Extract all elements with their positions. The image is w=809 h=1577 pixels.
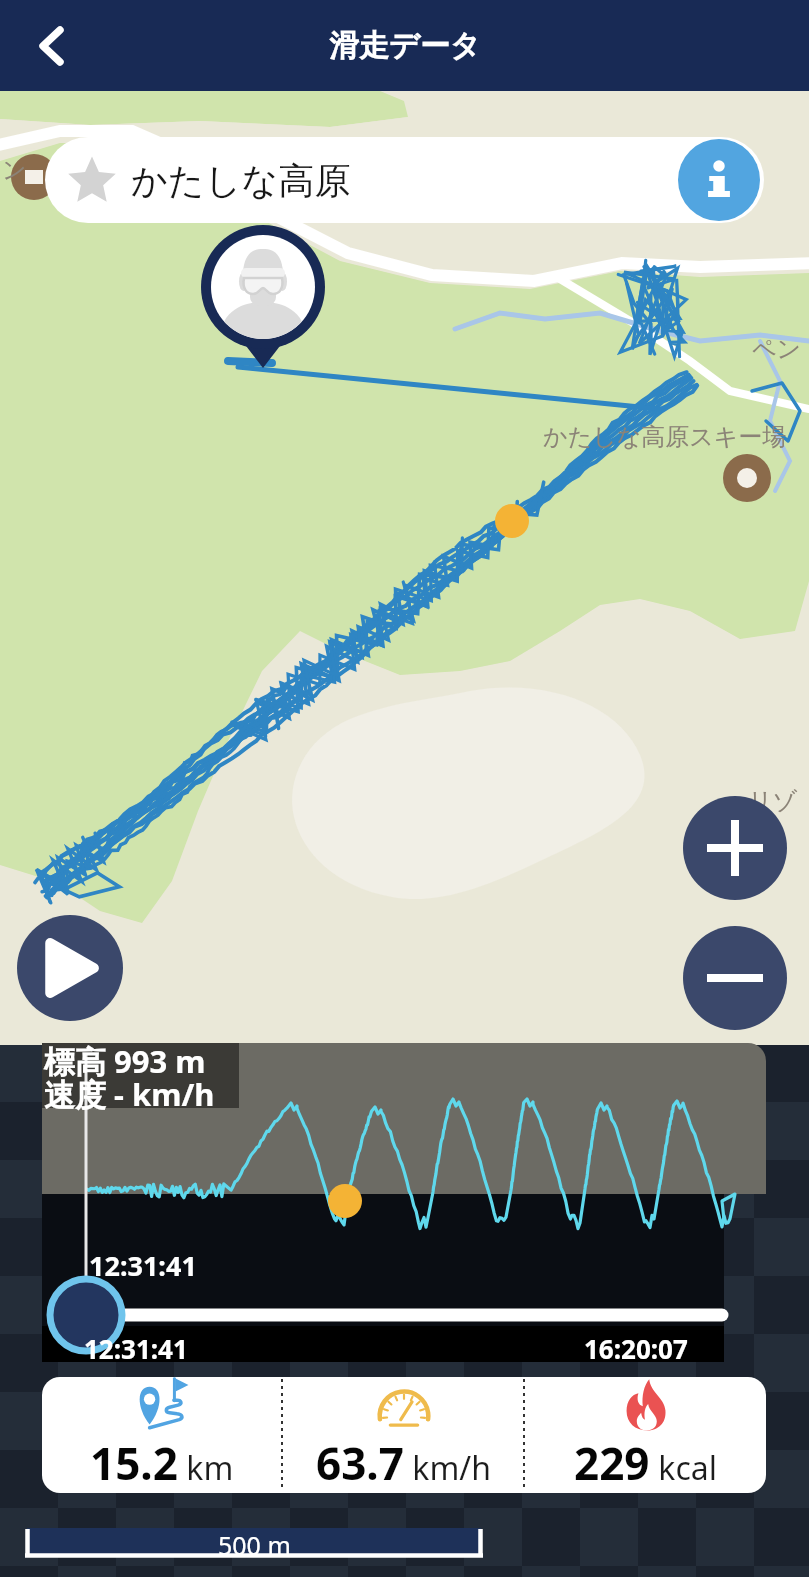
- button[interactable]: Zoom in: [683, 796, 787, 900]
- button[interactable]: 229: [525, 1377, 766, 1493]
- staticText: ン: [2, 155, 27, 185]
- button[interactable]: Information: [678, 139, 760, 221]
- button[interactable]: 15.2: [42, 1377, 282, 1493]
- staticText: 229: [574, 1433, 650, 1493]
- staticText: 63.7: [316, 1433, 404, 1493]
- button[interactable]: かたしな高原: [45, 137, 764, 223]
- staticText: かたしな高原スキー場: [543, 422, 787, 452]
- staticText: かたしな高原: [131, 158, 351, 203]
- staticText: 16:20:07: [584, 1331, 688, 1362]
- staticText: 12:31:41: [89, 1247, 197, 1284]
- staticText: 15.2: [90, 1433, 178, 1493]
- staticText: 500 m: [218, 1528, 291, 1558]
- staticText: 標高 993 m: [44, 1040, 206, 1082]
- staticText: km/h: [404, 1446, 492, 1490]
- staticText: kcal: [650, 1446, 717, 1490]
- staticText: 滑走データ: [329, 27, 481, 65]
- button[interactable]: 63.7: [283, 1377, 524, 1493]
- staticText: 速度 - km/h: [44, 1073, 215, 1115]
- button[interactable]: Play: [17, 915, 123, 1021]
- staticText: km: [178, 1446, 234, 1490]
- button[interactable]: Back: [14, 12, 82, 80]
- staticText: リゾー: [748, 786, 809, 848]
- button[interactable]: Zoom out: [683, 926, 787, 1030]
- button[interactable]: Skier position: [196, 223, 330, 378]
- staticText: 12:31:41: [84, 1331, 188, 1362]
- button[interactable]: Playback position: [42, 1283, 724, 1349]
- staticText: ペン: [752, 334, 802, 364]
